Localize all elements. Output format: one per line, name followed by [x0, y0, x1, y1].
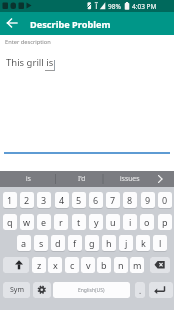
button[interactable]: z — [32, 257, 46, 273]
button[interactable]: u — [106, 214, 120, 230]
staticText: z — [37, 259, 42, 271]
staticText: 3 — [41, 194, 47, 206]
button[interactable]: . — [135, 282, 145, 298]
staticText: s — [39, 237, 44, 249]
button[interactable]: k — [136, 235, 150, 251]
button[interactable]: y — [89, 214, 103, 230]
staticText: 6 — [93, 194, 99, 206]
button[interactable]: c — [65, 257, 79, 273]
staticText: k — [141, 237, 146, 249]
staticText: b — [101, 259, 107, 271]
button[interactable]: 2 — [20, 192, 34, 208]
staticText: 4:03 PM — [132, 2, 157, 11]
staticText: 8 — [127, 194, 133, 206]
button[interactable]: issues — [107, 171, 153, 187]
staticText: This grill is — [6, 56, 54, 69]
staticText: v — [86, 259, 91, 271]
staticText: 4 — [59, 194, 65, 206]
staticText: i — [129, 216, 132, 228]
staticText: c — [70, 259, 75, 271]
button[interactable]: 3 — [37, 192, 51, 208]
button[interactable]: h — [102, 235, 116, 251]
button[interactable] — [150, 257, 170, 273]
button[interactable]: 6 — [89, 192, 103, 208]
staticText: j — [125, 237, 128, 249]
staticText: 7 — [110, 194, 116, 206]
button[interactable]: v — [81, 257, 95, 273]
button[interactable]: s — [34, 235, 48, 251]
staticText: a — [21, 237, 27, 249]
button[interactable]: t — [72, 214, 86, 230]
button[interactable]: 1 — [3, 192, 17, 208]
button[interactable]: 0 — [158, 192, 172, 208]
staticText: 1 — [7, 194, 13, 206]
button[interactable]: n — [114, 257, 128, 273]
button[interactable]: x — [48, 257, 62, 273]
button[interactable]: i — [123, 214, 137, 230]
button[interactable]: l — [153, 235, 167, 251]
staticText: m — [133, 259, 142, 271]
button[interactable]: is — [0, 171, 56, 187]
button[interactable]: 8 — [123, 192, 137, 208]
staticText: h — [106, 237, 112, 249]
button[interactable]: f — [68, 235, 82, 251]
button[interactable] — [3, 257, 29, 273]
staticText: u — [110, 216, 116, 228]
staticText: Sym — [10, 285, 24, 295]
button[interactable]: r — [54, 214, 68, 230]
button[interactable]: 5 — [72, 192, 86, 208]
button[interactable]: Sym — [3, 282, 30, 298]
button[interactable] — [149, 282, 173, 298]
staticText: l — [159, 237, 162, 249]
staticText: English(US) — [78, 287, 105, 294]
button[interactable]: e — [37, 214, 51, 230]
button[interactable] — [0, 12, 24, 35]
staticText: I'd — [78, 174, 86, 184]
staticText: e — [41, 216, 47, 228]
staticText: n — [118, 259, 124, 271]
staticText: d — [55, 237, 61, 249]
button[interactable]: a — [17, 235, 31, 251]
staticText: 9 — [145, 194, 151, 206]
staticText: x — [53, 259, 58, 271]
staticText: 0 — [162, 194, 168, 206]
staticText: g — [89, 237, 95, 249]
staticText: 2 — [24, 194, 30, 206]
staticText: . — [139, 285, 142, 296]
button[interactable]: q — [3, 214, 17, 230]
button[interactable]: w — [20, 214, 34, 230]
button[interactable]: o — [140, 214, 154, 230]
staticText: w — [23, 216, 31, 228]
staticText: r — [59, 216, 63, 228]
staticText: y — [94, 216, 99, 228]
staticText: t — [77, 216, 81, 228]
button[interactable]: 4 — [55, 192, 69, 208]
button[interactable] — [53, 282, 130, 298]
staticText: p — [162, 216, 168, 228]
button[interactable]: 9 — [141, 192, 155, 208]
button[interactable]: m — [130, 257, 144, 273]
staticText: Describe Problem — [30, 18, 111, 31]
staticText: q — [7, 216, 13, 228]
button[interactable]: b — [97, 257, 111, 273]
button[interactable]: 7 — [106, 192, 120, 208]
button[interactable]: j — [119, 235, 133, 251]
button[interactable]: p — [158, 214, 172, 230]
staticText: 5 — [76, 194, 82, 206]
button[interactable]: g — [85, 235, 99, 251]
staticText: 98% — [108, 2, 121, 11]
staticText: is — [26, 174, 31, 184]
staticText: Enter description — [5, 38, 51, 46]
staticText: f — [73, 237, 77, 249]
staticText: issues — [120, 174, 140, 184]
staticText: o — [144, 216, 150, 228]
button[interactable]: d — [51, 235, 65, 251]
button[interactable]: I'd — [56, 171, 107, 187]
button[interactable] — [33, 282, 51, 298]
